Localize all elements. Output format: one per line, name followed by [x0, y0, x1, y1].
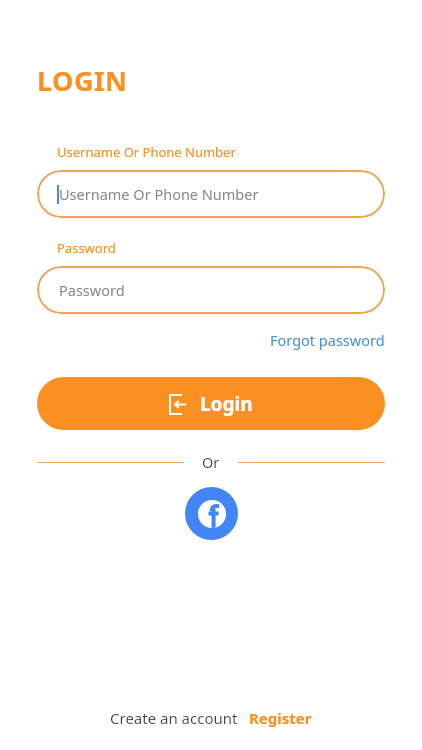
- staticText: Password: [59, 280, 125, 300]
- staticText: Register: [249, 708, 312, 728]
- staticText: Username Or Phone Number: [59, 184, 259, 204]
- button[interactable]: Username Or Phone Number: [37, 170, 385, 218]
- staticText: Username Or Phone Number: [57, 143, 236, 161]
- button[interactable]: Login: [37, 377, 385, 430]
- staticText: Login: [200, 391, 253, 417]
- button[interactable]: Password: [37, 266, 385, 314]
- staticText: Password: [57, 239, 116, 257]
- staticText: Or: [202, 452, 220, 472]
- staticText: Forgot password: [270, 330, 385, 350]
- button[interactable]: Register: [249, 708, 312, 728]
- staticText: Create an account: [110, 708, 238, 728]
- button[interactable]: Forgot password: [270, 330, 385, 350]
- staticText: LOGIN: [37, 62, 128, 99]
- button[interactable]: Sign in with Facebook: [185, 487, 238, 540]
